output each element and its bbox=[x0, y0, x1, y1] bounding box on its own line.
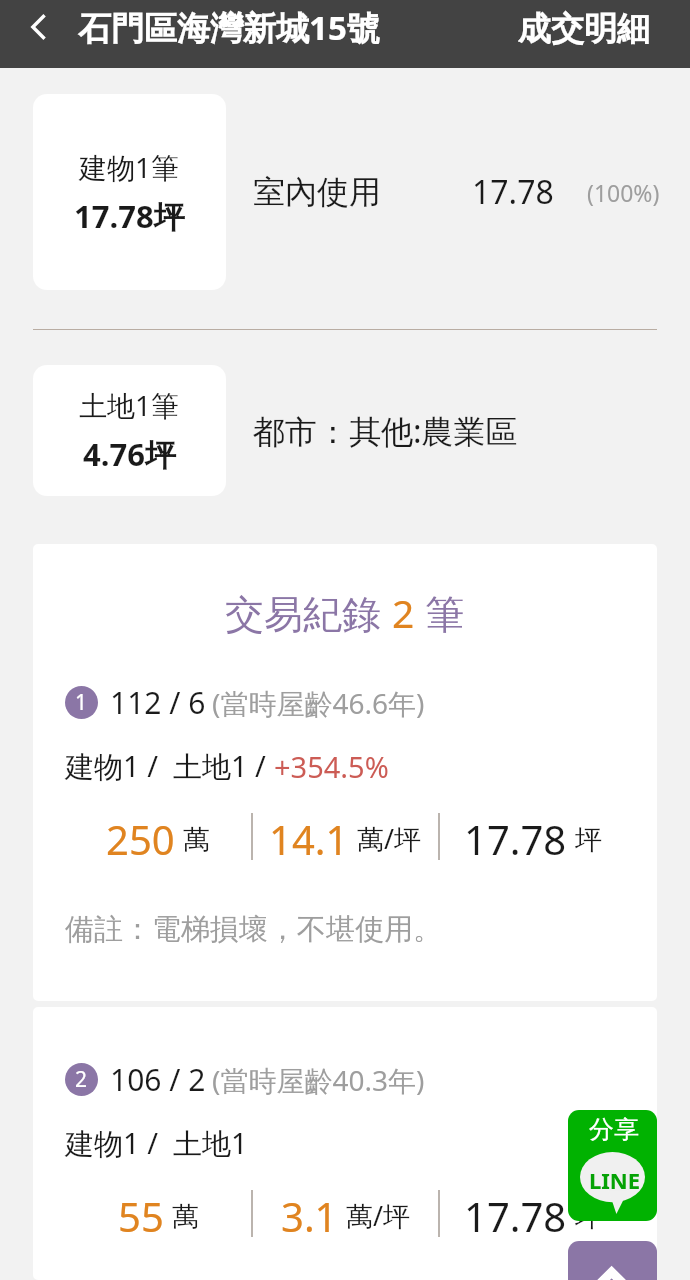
staticText: 萬/坪 bbox=[346, 1197, 411, 1234]
button[interactable]: Share to LINE bbox=[568, 1110, 657, 1221]
button[interactable]: 成交明細 bbox=[500, 0, 690, 54]
button[interactable]: 建物1筆 bbox=[33, 94, 226, 290]
staticText: 4.76坪 bbox=[83, 433, 176, 475]
staticText: 112 / 6 bbox=[110, 682, 206, 723]
button[interactable]: Back bbox=[0, 0, 78, 54]
button[interactable]: 土地1筆 bbox=[33, 365, 226, 496]
staticText: +354.5% bbox=[274, 747, 389, 786]
staticText: 2 bbox=[392, 586, 415, 639]
staticText: 土地1筆 bbox=[79, 386, 180, 424]
staticText: 分享 bbox=[589, 1114, 639, 1145]
staticText: LINE bbox=[589, 1165, 641, 1195]
staticText: 石門區海灣新城15號 bbox=[78, 5, 380, 50]
staticText: 萬 bbox=[172, 1200, 199, 1234]
staticText: 建物1筆 bbox=[79, 148, 180, 186]
button[interactable]: Scroll to top bbox=[568, 1241, 657, 1280]
staticText: 坪 bbox=[575, 1200, 602, 1234]
staticText: 交易紀錄 bbox=[225, 586, 392, 639]
staticText: 坪 bbox=[575, 823, 602, 857]
staticText: 建物1 / 土地1 bbox=[65, 1123, 248, 1163]
staticText: 成交明細 bbox=[518, 8, 650, 46]
staticText: 筆 bbox=[415, 586, 465, 639]
staticText: 室內使用 bbox=[253, 172, 381, 212]
staticText: 建物1 / 土地1 / bbox=[65, 746, 274, 786]
staticText: 1 bbox=[75, 688, 88, 717]
staticText: 備註：電梯損壞，不堪使用。 bbox=[65, 911, 442, 948]
staticText: (當時屋齡46.6年) bbox=[212, 684, 425, 722]
staticText: 17.78 bbox=[472, 170, 554, 214]
staticText: 14.1 bbox=[269, 812, 349, 860]
staticText: 17.78 bbox=[464, 812, 567, 860]
staticText: 3.1 bbox=[281, 1189, 338, 1237]
staticText: 萬/坪 bbox=[357, 820, 422, 857]
staticText: 17.78 bbox=[464, 1189, 567, 1237]
staticText: 都市：其他:農業區 bbox=[253, 409, 518, 453]
staticText: 106 / 2 bbox=[110, 1059, 206, 1100]
staticText: (當時屋齡40.3年) bbox=[212, 1061, 425, 1099]
staticText: (100%) bbox=[587, 177, 660, 208]
staticText: 萬 bbox=[183, 823, 210, 857]
staticText: 2 bbox=[75, 1065, 88, 1094]
staticText: 17.78坪 bbox=[74, 195, 185, 237]
staticText: 250 bbox=[106, 812, 175, 860]
staticText: 55 bbox=[118, 1189, 164, 1237]
